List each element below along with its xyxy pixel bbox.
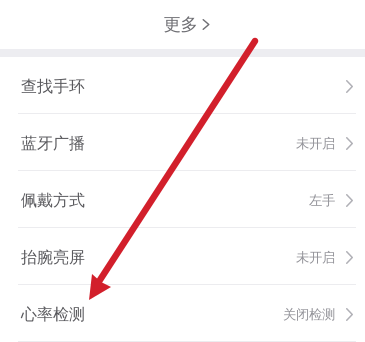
staticText: 心率检测 — [21, 305, 85, 324]
button[interactable]: 佩戴方式 — [0, 171, 365, 227]
button[interactable]: 心率检测 — [0, 285, 365, 341]
staticText: 查找手环 — [21, 77, 85, 96]
staticText: 左手 — [309, 192, 335, 209]
button[interactable]: 抬腕亮屏 — [0, 228, 365, 284]
staticText: 未开启 — [296, 249, 335, 266]
staticText: 佩戴方式 — [21, 191, 85, 210]
staticText: 蓝牙广播 — [21, 134, 85, 153]
button[interactable]: 蓝牙广播 — [0, 114, 365, 170]
staticText: 更多 — [163, 14, 197, 35]
staticText: 关闭检测 — [283, 306, 335, 323]
button[interactable]: 查找手环 — [0, 57, 365, 113]
staticText: 未开启 — [296, 135, 335, 152]
staticText: 抬腕亮屏 — [21, 248, 85, 267]
button[interactable]: 更多 — [155, 0, 209, 49]
